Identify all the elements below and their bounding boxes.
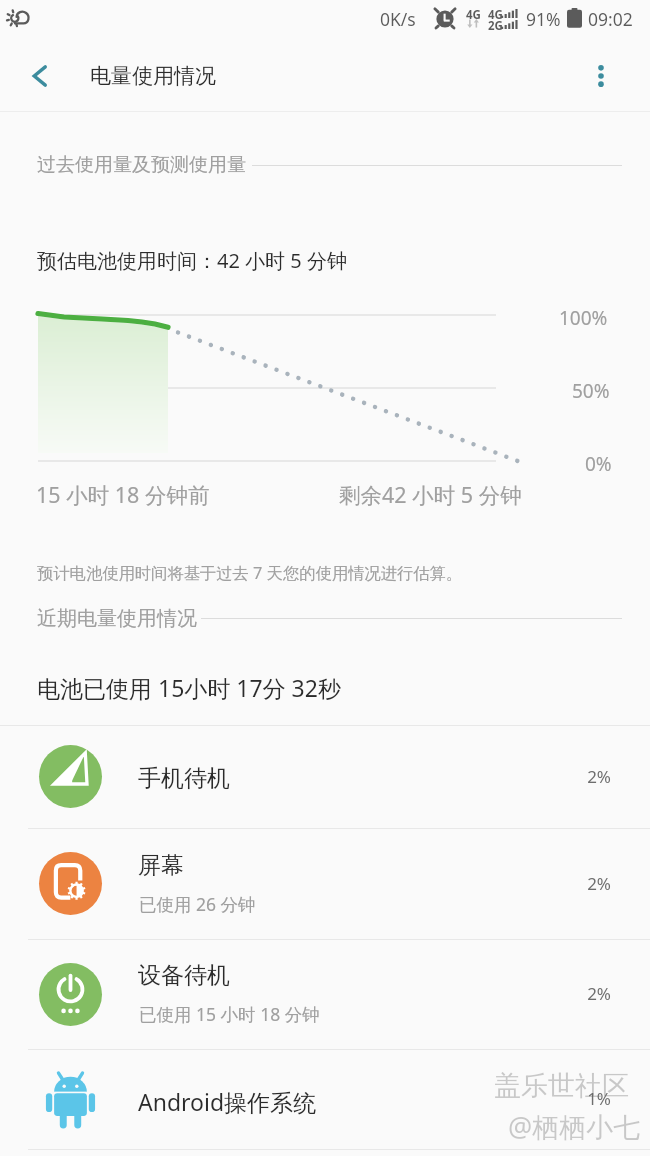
staticText: 设备待机: [138, 961, 230, 990]
button[interactable]: More options: [578, 53, 624, 99]
staticText: 预计电池使用时间将基于过去 7 天您的使用情况进行估算。: [37, 562, 463, 584]
staticText: 电池已使用 15小时 17分 32秒: [37, 672, 341, 703]
staticText: 屏幕: [138, 851, 184, 880]
staticText: 近期电量使用情况: [37, 606, 197, 631]
staticText: 4G: [466, 7, 481, 23]
staticText: 电量使用情况: [90, 63, 216, 89]
button[interactable]: 屏幕: [0, 828, 650, 939]
staticText: Android操作系统: [138, 1086, 317, 1117]
staticText: @栖栖小七: [508, 1108, 641, 1145]
staticText: 盖乐世社区: [494, 1069, 629, 1103]
staticText: 2%: [565, 765, 611, 788]
staticText: 0K/s: [380, 7, 416, 31]
button[interactable]: Android操作系统: [0, 1049, 650, 1149]
staticText: 91%: [526, 7, 561, 31]
button[interactable]: 手机待机: [0, 725, 650, 828]
button[interactable]: 设备待机: [0, 939, 650, 1049]
staticText: 2G: [488, 18, 503, 34]
staticText: 100%: [559, 305, 608, 331]
button[interactable]: Back: [18, 54, 62, 98]
staticText: 已使用 15 小时 18 分钟: [139, 1002, 320, 1026]
staticText: 2%: [565, 872, 611, 895]
staticText: 剩余42 小时 5 分钟: [339, 480, 522, 509]
staticText: 已使用 26 分钟: [139, 892, 256, 916]
staticText: 预估电池使用时间：42 小时 5 分钟: [37, 247, 347, 274]
staticText: 1%: [565, 1087, 611, 1110]
staticText: 50%: [572, 378, 610, 404]
staticText: 09:02: [588, 7, 633, 31]
staticText: 2%: [565, 982, 611, 1005]
staticText: 0%: [585, 451, 612, 477]
staticText: 过去使用量及预测使用量: [37, 153, 246, 177]
staticText: 手机待机: [138, 764, 230, 793]
staticText: 15 小时 18 分钟前: [36, 480, 210, 509]
staticText: 4G: [488, 7, 503, 23]
